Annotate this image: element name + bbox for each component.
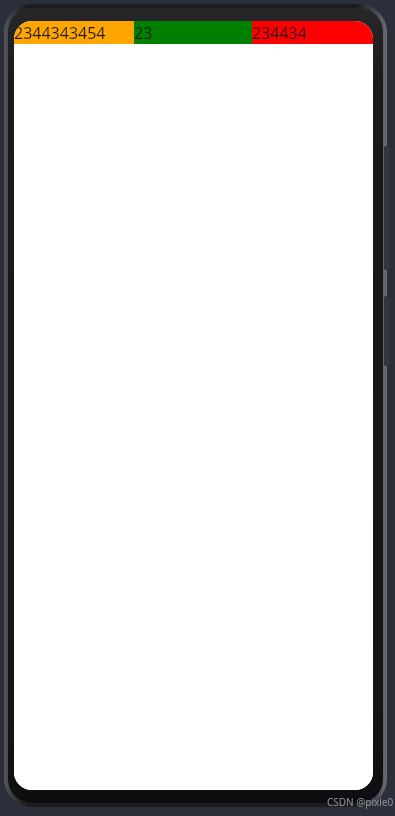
button[interactable]: 234434: [252, 21, 373, 44]
staticText: 2344343454: [14, 22, 106, 44]
staticText: 234434: [252, 22, 307, 44]
button[interactable]: 2344343454: [14, 21, 134, 44]
staticText: CSDN @pixle0: [327, 795, 394, 809]
staticText: 23: [134, 22, 153, 44]
button[interactable]: 23: [134, 21, 252, 44]
